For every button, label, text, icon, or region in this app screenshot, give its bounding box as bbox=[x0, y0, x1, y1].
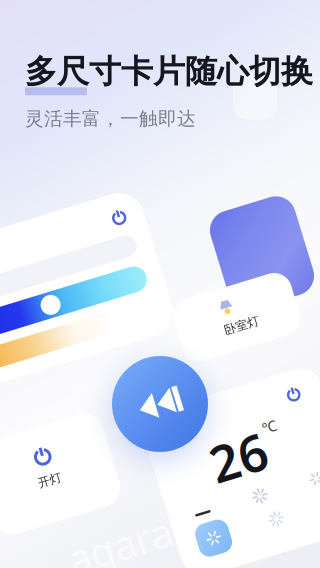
staticText: 卧室灯 bbox=[221, 319, 257, 334]
staticText: 多尺寸卡片随心切换 bbox=[25, 52, 313, 91]
staticText: ℃ bbox=[274, 424, 289, 443]
staticText: 灵活丰富，一触即达 bbox=[25, 107, 196, 130]
staticText: 开灯 bbox=[36, 473, 60, 488]
staticText: 26 bbox=[214, 420, 272, 487]
